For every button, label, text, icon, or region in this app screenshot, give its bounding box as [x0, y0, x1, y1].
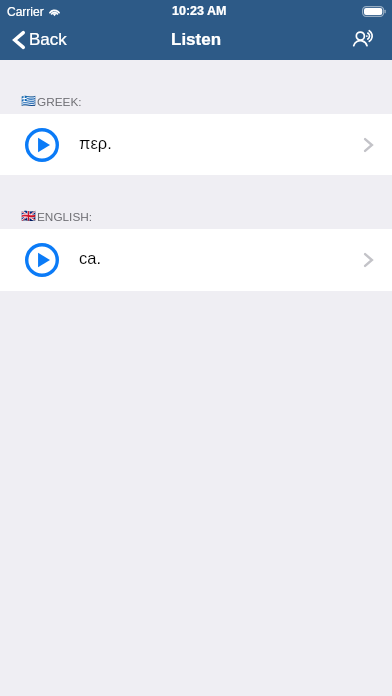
button[interactable]: ca.	[0, 229, 392, 291]
button[interactable]: Voice over	[349, 27, 379, 54]
staticText: Listen	[171, 30, 222, 49]
staticText: περ.	[79, 134, 112, 152]
staticText: ca.	[79, 249, 102, 267]
staticText: 🇬🇷	[21, 94, 36, 108]
staticText: ENGLISH:	[37, 210, 93, 223]
staticText: 10:23 AM	[172, 4, 227, 18]
staticText: Carrier	[7, 5, 44, 18]
staticText: 🇬🇧	[21, 209, 36, 223]
staticText: Back	[29, 30, 67, 49]
staticText: GREEK:	[37, 95, 82, 108]
button[interactable]: Back	[0, 30, 75, 49]
button[interactable]: περ.	[0, 114, 392, 175]
